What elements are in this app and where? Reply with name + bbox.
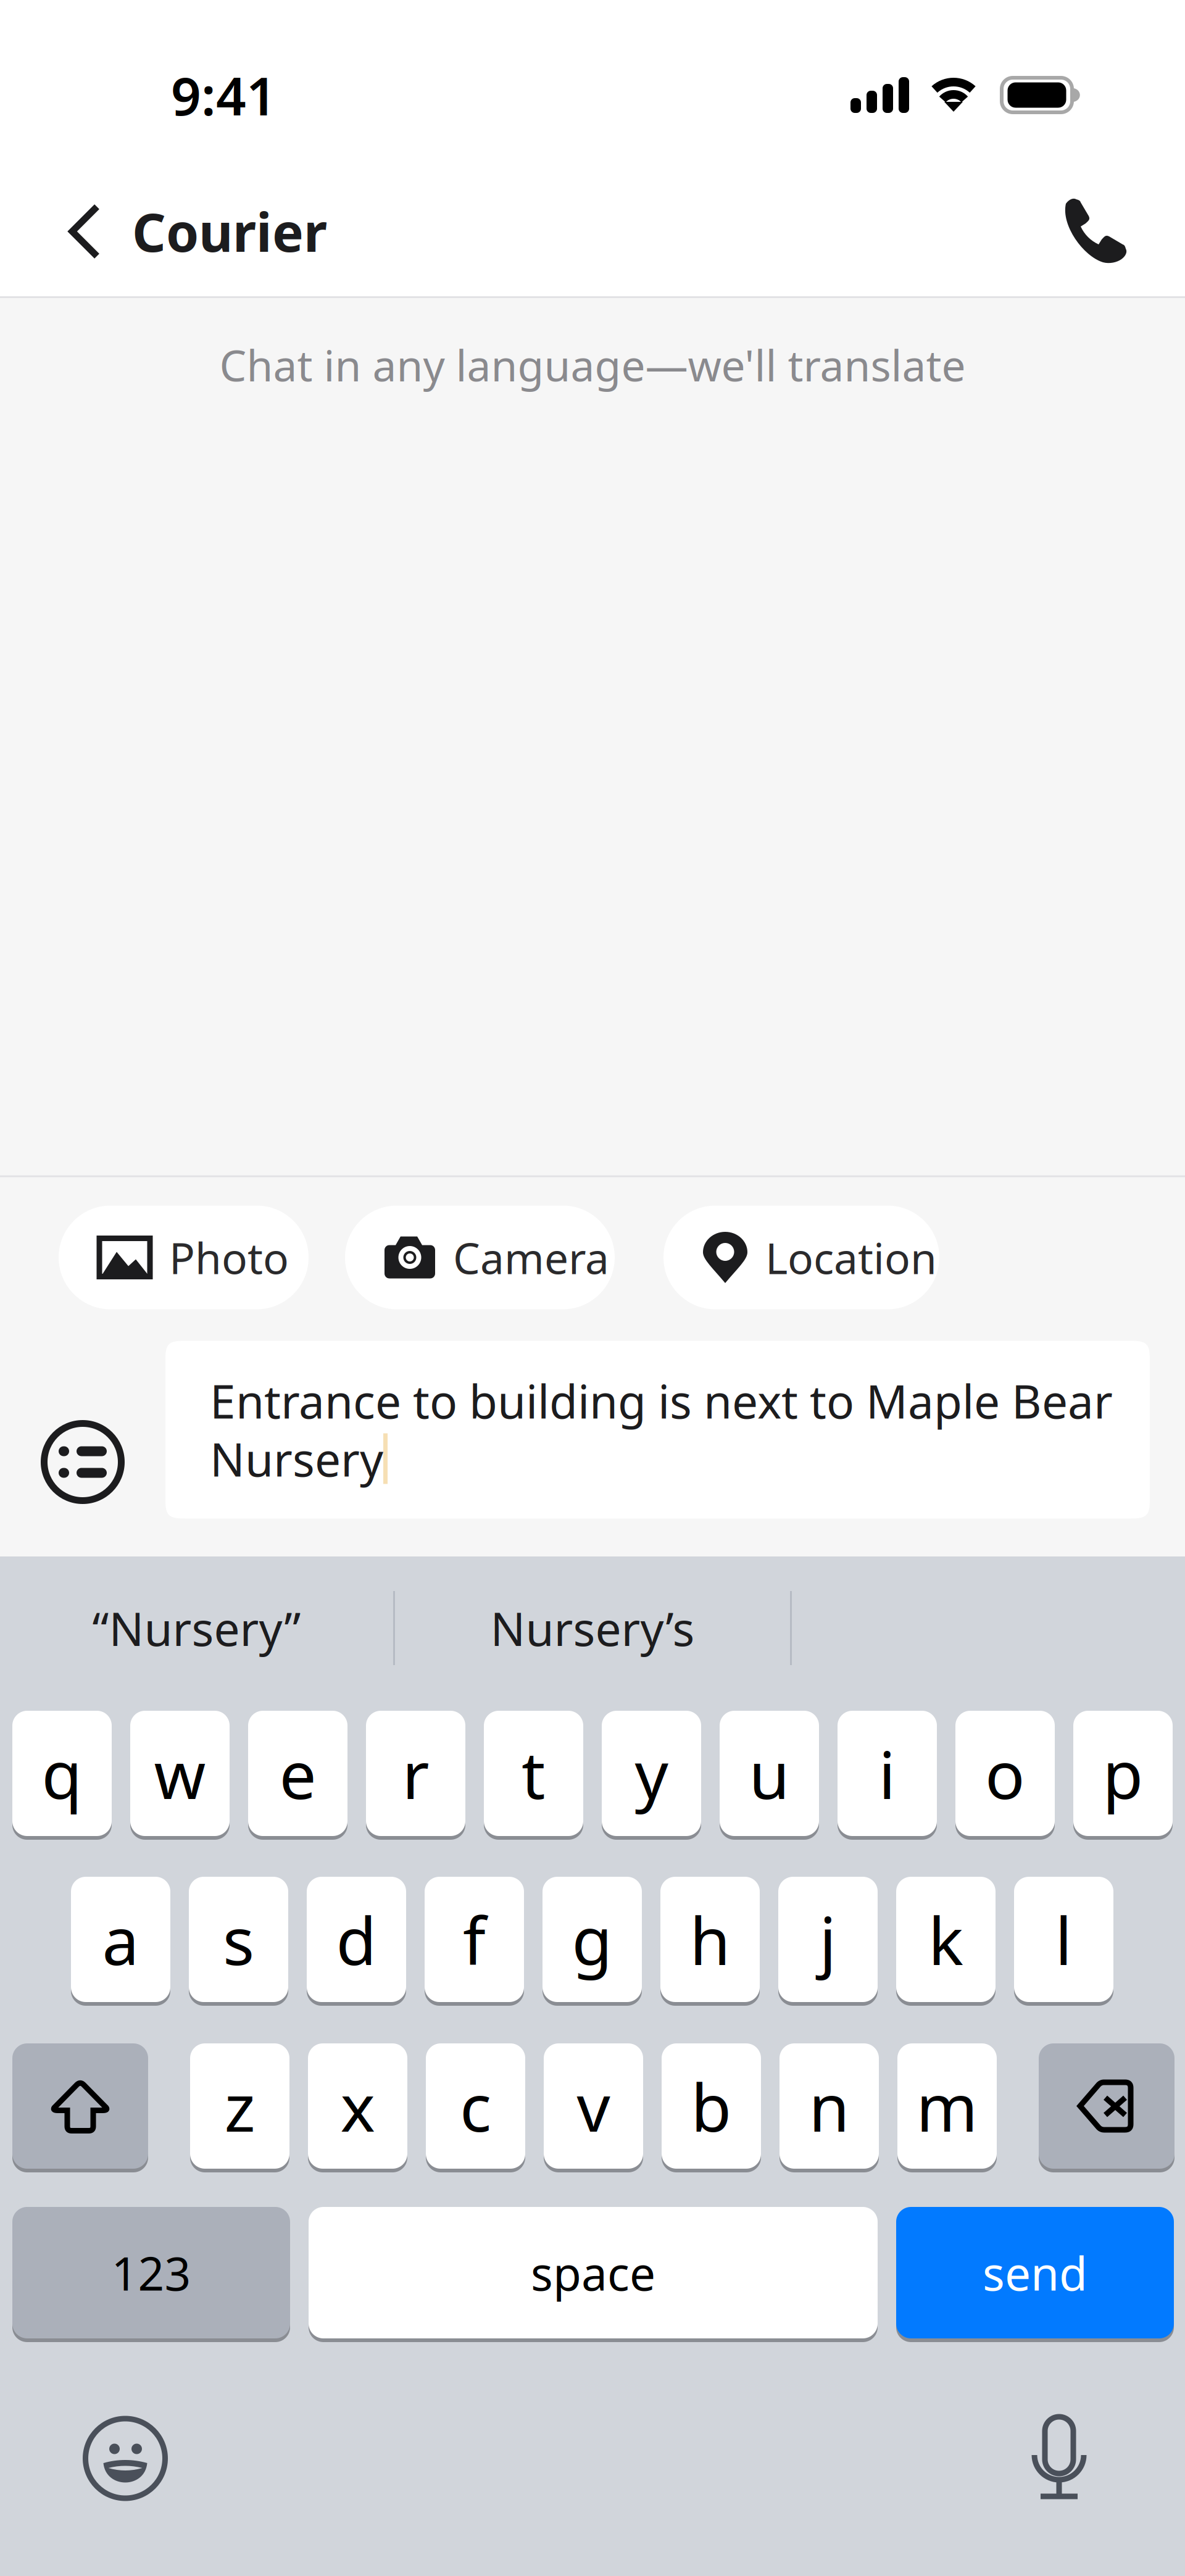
staticText: Photo [169, 1229, 289, 1286]
button[interactable]: m [897, 2043, 997, 2172]
staticText: u [749, 1730, 790, 1817]
staticText: z [224, 2062, 255, 2150]
staticText: k [928, 1896, 963, 1983]
button[interactable]: h [660, 1877, 760, 2006]
button[interactable]: Call [1050, 173, 1137, 290]
staticText: e [279, 1730, 316, 1817]
staticText: d [336, 1896, 377, 1983]
button[interactable]: i [838, 1711, 937, 1840]
button[interactable]: Location [663, 1206, 939, 1309]
button[interactable]: y [602, 1711, 701, 1840]
button[interactable]: j [778, 1877, 878, 2006]
staticText: Nursery’s [490, 1597, 695, 1659]
button[interactable]: Shift [12, 2043, 148, 2172]
button[interactable]: Dictate [1004, 2417, 1115, 2500]
button[interactable]: o [955, 1711, 1055, 1840]
button[interactable]: Back [49, 173, 120, 290]
staticText: y [635, 1730, 668, 1817]
staticText: Chat in any language—we'll translate [219, 336, 966, 393]
button[interactable]: k [896, 1877, 996, 2006]
staticText: r [402, 1730, 429, 1817]
staticText: a [102, 1896, 139, 1983]
staticText: n [809, 2062, 850, 2150]
button[interactable]: z [190, 2043, 289, 2172]
button[interactable]: send [896, 2207, 1174, 2342]
button[interactable]: g [543, 1877, 642, 2006]
staticText: “Nursery” [92, 1597, 301, 1659]
button[interactable]: f [425, 1877, 524, 2006]
button[interactable]: d [307, 1877, 406, 2006]
button[interactable]: e [248, 1711, 347, 1840]
staticText: l [1055, 1896, 1072, 1983]
staticText: 9:41 [171, 60, 276, 130]
button[interactable]: Photo [59, 1206, 309, 1309]
staticText: 123 [111, 2242, 191, 2303]
button[interactable]: u [720, 1711, 819, 1840]
button[interactable]: v [544, 2043, 643, 2172]
staticText: w [154, 1730, 206, 1817]
staticText: b [691, 2062, 732, 2150]
staticText: o [985, 1730, 1025, 1817]
staticText: c [460, 2062, 491, 2150]
staticText: t [522, 1730, 546, 1817]
staticText: Entrance to building is next to Maple Be… [210, 1370, 1113, 1431]
button[interactable]: r [366, 1711, 465, 1840]
staticText: m [916, 2062, 978, 2150]
staticText: s [223, 1896, 254, 1983]
staticText: q [42, 1730, 82, 1817]
staticText: f [463, 1896, 486, 1983]
staticText: Location [765, 1229, 937, 1286]
button[interactable]: Quick replies [0, 1340, 165, 1519]
staticText: send [983, 2242, 1087, 2303]
button[interactable]: l [1014, 1877, 1113, 2006]
staticText: space [531, 2242, 655, 2303]
button[interactable]: Nursery’s [395, 1577, 790, 1679]
staticText: h [690, 1896, 730, 1983]
staticText: x [340, 2062, 375, 2150]
staticText: Nursery [210, 1428, 383, 1489]
button[interactable]: s [189, 1877, 288, 2006]
button[interactable]: q [12, 1711, 112, 1840]
button[interactable]: a [71, 1877, 170, 2006]
staticText: p [1103, 1730, 1143, 1817]
button[interactable]: p [1073, 1711, 1173, 1840]
button[interactable]: space [309, 2207, 878, 2342]
button[interactable]: b [662, 2043, 761, 2172]
button[interactable]: t [484, 1711, 583, 1840]
staticText: v [577, 2062, 610, 2150]
button[interactable]: 123 [12, 2207, 290, 2342]
staticText: Camera [453, 1229, 609, 1286]
staticText: g [572, 1896, 613, 1983]
button[interactable]: Delete [1039, 2043, 1175, 2172]
staticText: j [819, 1896, 837, 1983]
button[interactable]: w [130, 1711, 230, 1840]
button[interactable]: c [426, 2043, 525, 2172]
button[interactable]: n [780, 2043, 879, 2172]
button[interactable]: “Nursery” [0, 1577, 393, 1679]
button[interactable]: Camera [345, 1206, 615, 1309]
button[interactable]: x [308, 2043, 407, 2172]
staticText: i [879, 1730, 896, 1817]
button[interactable]: Emoji [70, 2417, 181, 2500]
staticText: Courier [132, 196, 327, 266]
